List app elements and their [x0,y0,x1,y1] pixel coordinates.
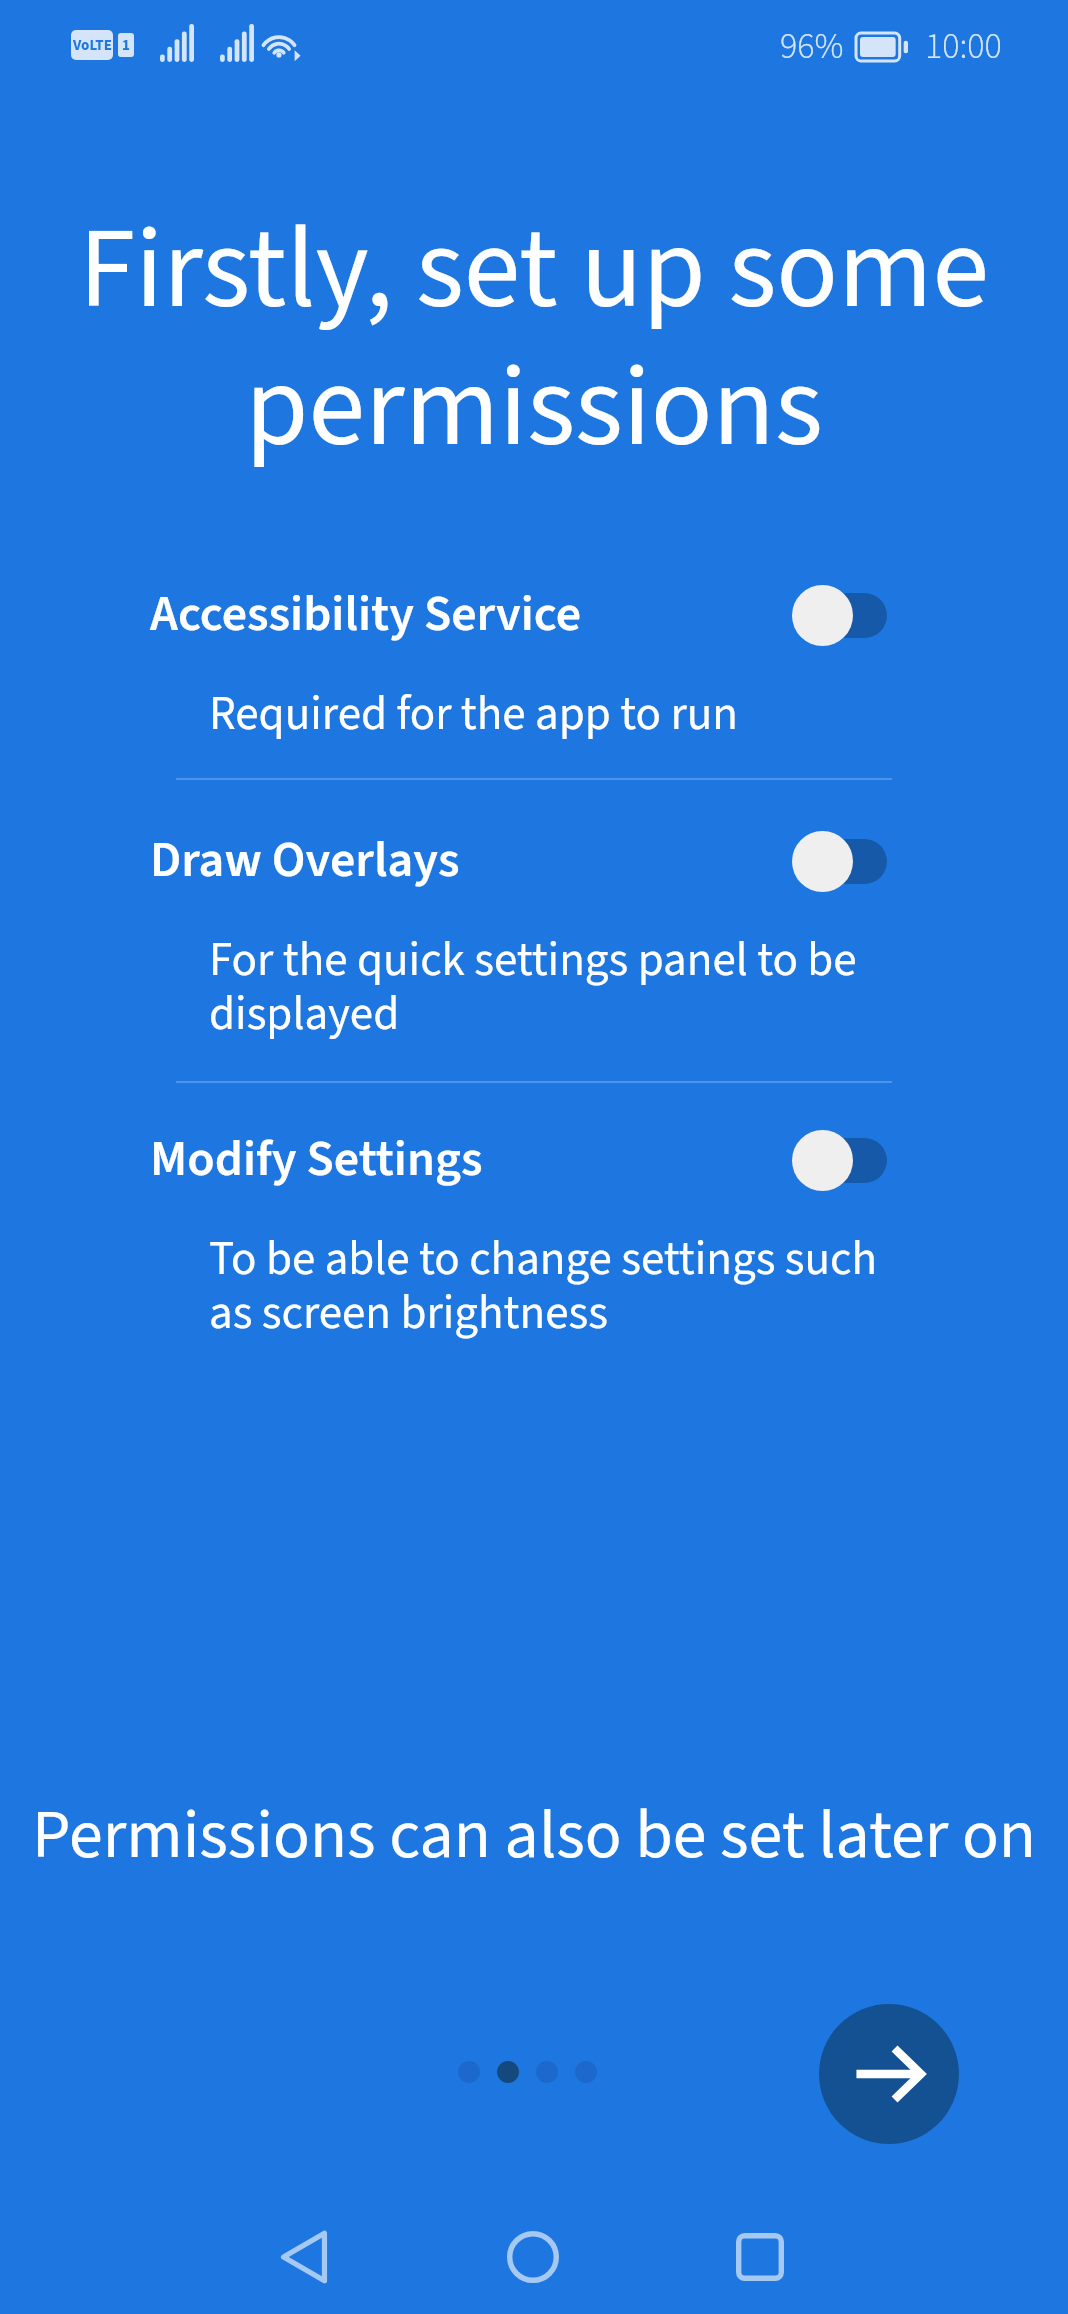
staticText: Draw Overlays [150,825,792,896]
staticText: VoLTE [73,35,112,56]
button[interactable]: Modify Settings [150,1124,887,1195]
button[interactable]: Next [819,2004,959,2144]
staticText: Required for the app to run [209,681,909,748]
button[interactable]: Toggle permission [792,582,887,648]
staticText: Modify Settings [150,1124,792,1195]
button[interactable]: Accessibility Service [150,579,887,650]
staticText: For the quick settings panel to be displ… [209,927,909,1048]
button[interactable]: Recents [646,2200,874,2314]
staticText: Firstly, set up some permissions [50,189,1018,490]
staticText: To be able to change settings such as sc… [209,1226,909,1347]
button[interactable]: Back [190,2200,418,2314]
staticText: Accessibility Service [150,579,792,650]
staticText: 96% [780,21,844,72]
staticText: 10:00 [925,21,1002,72]
button[interactable]: Toggle permission [792,828,887,894]
staticText: Permissions can also be set later on [0,1787,1068,1884]
button[interactable]: Toggle permission [792,1127,887,1193]
staticText: 1 [122,35,130,56]
button[interactable]: Draw Overlays [150,825,887,896]
button[interactable]: Home [419,2200,647,2314]
